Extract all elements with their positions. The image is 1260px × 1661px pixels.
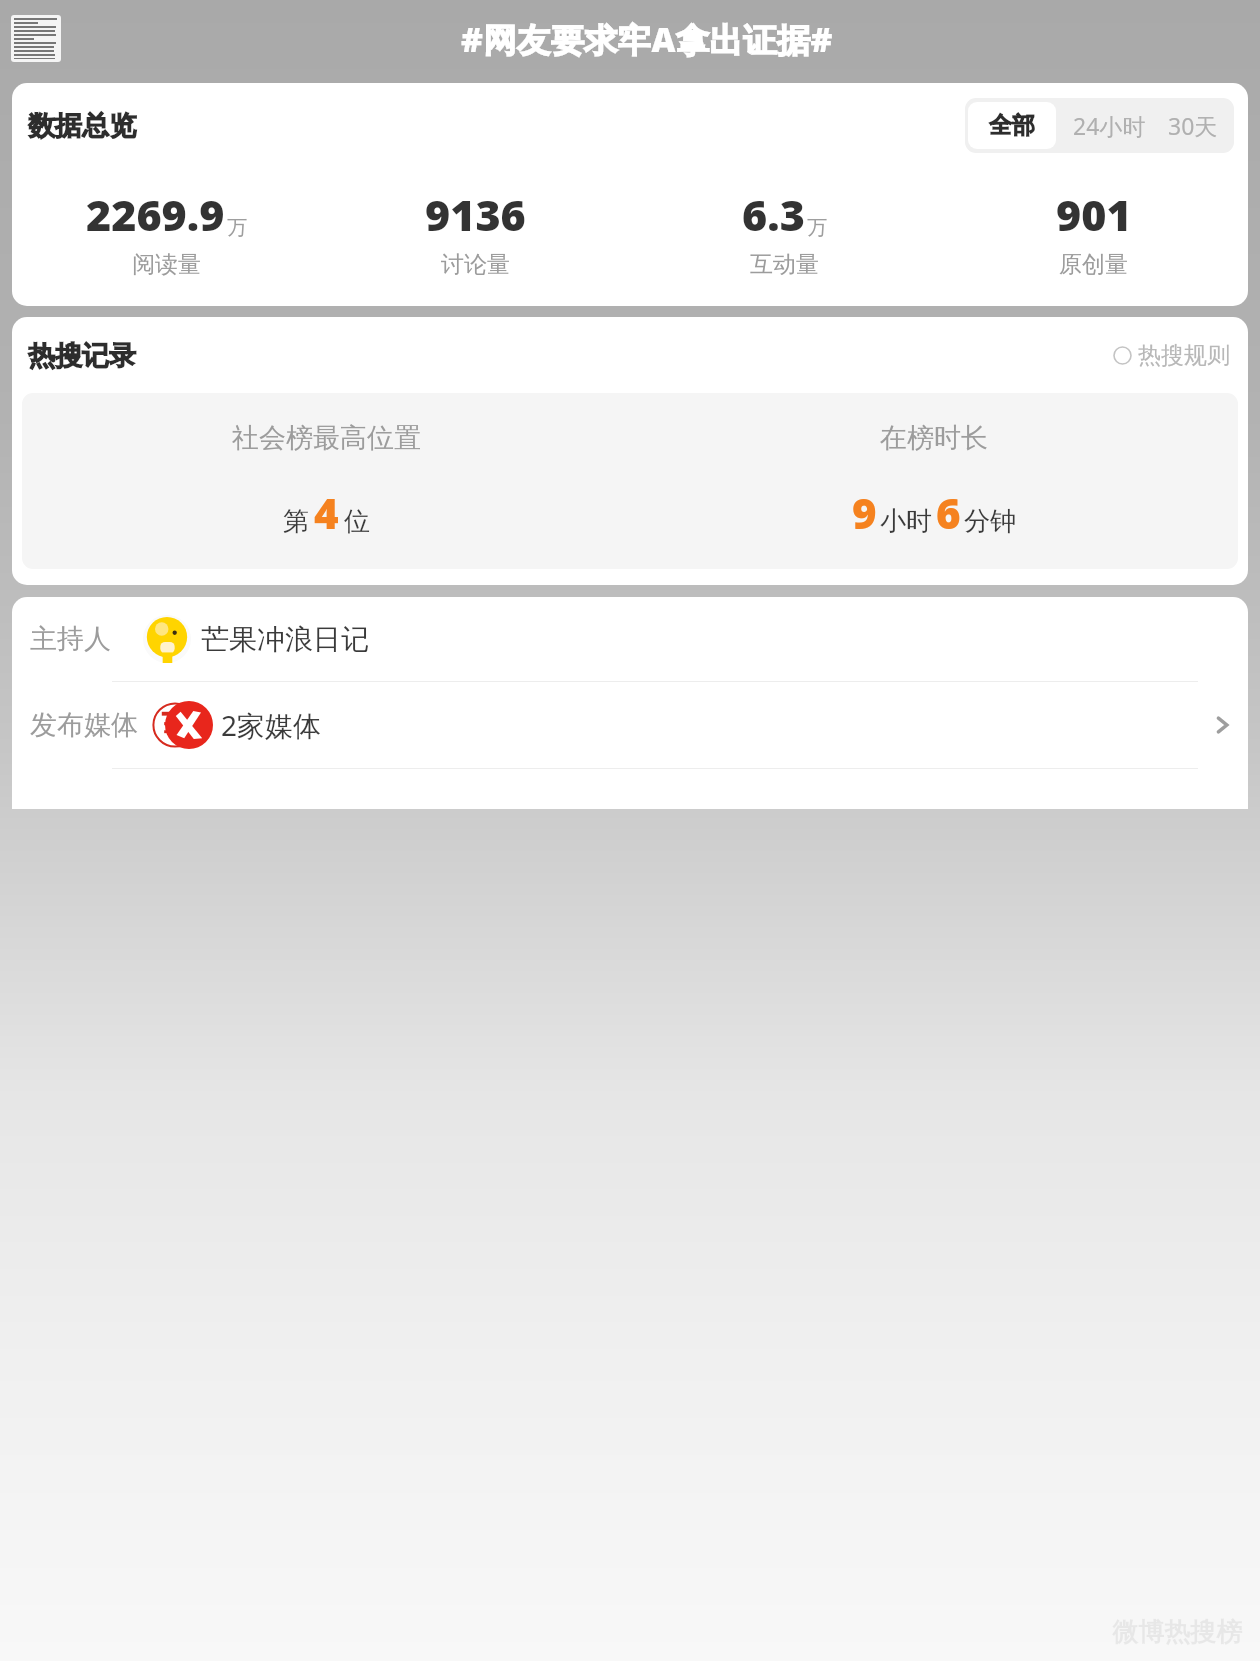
staticText: 小时 xyxy=(880,505,932,538)
staticText: 万 xyxy=(807,215,827,240)
staticText: 数据总览 xyxy=(28,109,136,143)
staticText: 9136 xyxy=(425,185,526,244)
staticText: 阅读量 xyxy=(132,250,201,279)
staticText: 在榜时长 xyxy=(880,421,988,455)
staticText: 社会榜最高位置 xyxy=(232,421,421,455)
staticText: 第 xyxy=(283,505,309,538)
staticText: 热搜规则 xyxy=(1138,341,1230,370)
staticText: 讨论量 xyxy=(441,250,510,279)
staticText: 6.3 xyxy=(742,185,805,244)
staticText: 芒果冲浪日记 xyxy=(201,622,369,657)
button[interactable]: 30天 xyxy=(1160,98,1234,153)
button[interactable]: 全部 xyxy=(968,102,1056,149)
staticText: 原创量 xyxy=(1059,250,1128,279)
staticText: 万 xyxy=(227,215,247,240)
button[interactable]: 主持人 xyxy=(12,597,1248,681)
staticText: 主持人 xyxy=(30,622,111,656)
button[interactable]: 发布媒体 xyxy=(12,682,1248,768)
staticText: 6 xyxy=(936,484,961,541)
staticText: 全部 xyxy=(989,111,1035,140)
staticText: 2家媒体 xyxy=(221,706,322,744)
staticText: 微博热搜榜 xyxy=(1112,1616,1242,1649)
staticText: 901 xyxy=(1056,185,1132,244)
staticText: 4 xyxy=(314,484,339,541)
staticText: 位 xyxy=(344,505,370,538)
staticText: 分钟 xyxy=(964,505,1016,538)
staticText: 9 xyxy=(852,484,877,541)
button[interactable]: 24小时 xyxy=(1059,98,1160,153)
button[interactable]: 热搜规则 xyxy=(1109,337,1234,374)
other: 查看发布媒体 xyxy=(1212,715,1232,735)
staticText: 30天 xyxy=(1168,110,1218,141)
staticText: 24小时 xyxy=(1073,110,1146,141)
staticText: 2269.9 xyxy=(86,185,225,244)
staticText: 发布媒体 xyxy=(30,708,138,742)
staticText: #网友要求牢A拿出证据# xyxy=(461,17,833,62)
staticText: 热搜记录 xyxy=(28,339,136,373)
staticText: 互动量 xyxy=(750,250,819,279)
